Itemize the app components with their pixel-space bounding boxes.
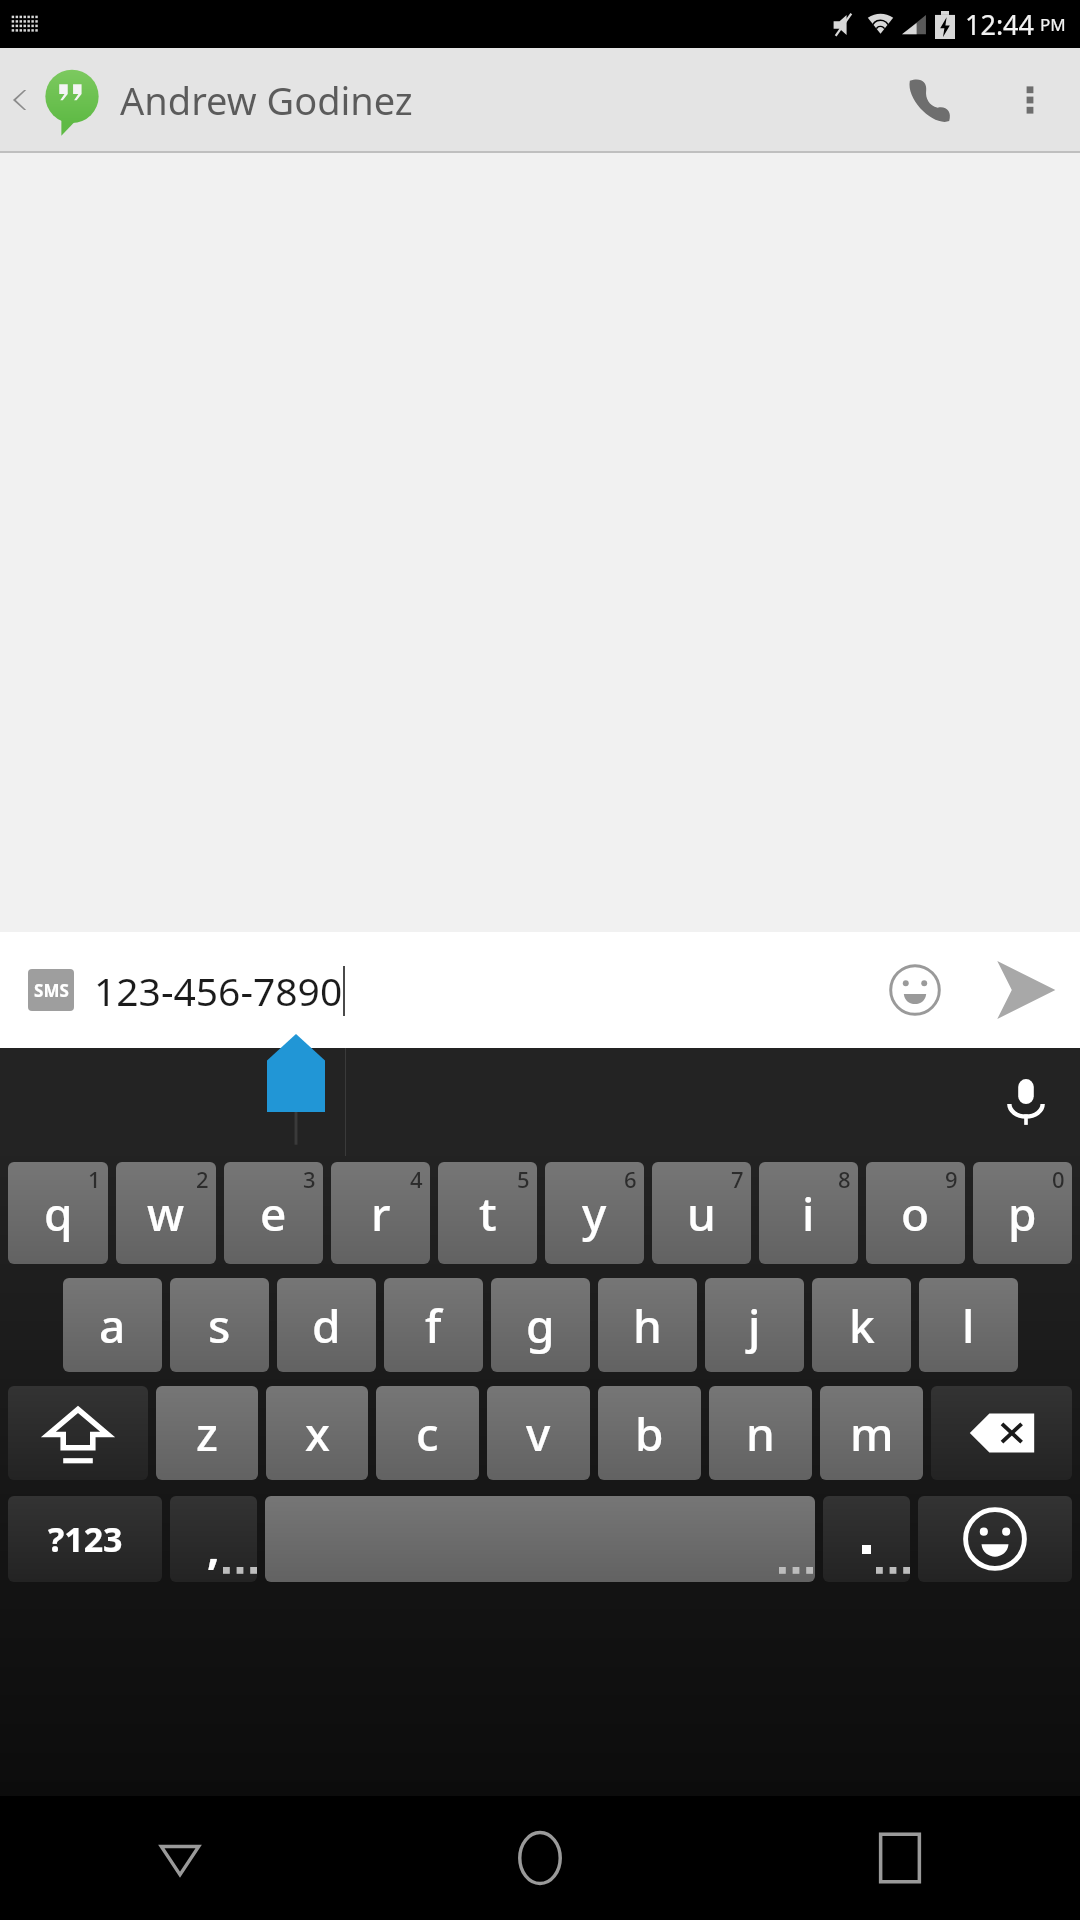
staticText: d [312,1294,341,1357]
button[interactable]: q [8,1162,108,1264]
staticText: p [1008,1182,1037,1245]
staticText: m [850,1402,894,1465]
button[interactable]: c [376,1386,479,1480]
button[interactable]: Send [970,935,1080,1045]
button[interactable]: l [919,1278,1018,1372]
staticText: 9 [945,1164,958,1194]
staticText: r [371,1182,391,1245]
button[interactable]: Emoji [918,1496,1072,1582]
staticText: y [582,1182,607,1245]
button[interactable]: u [652,1162,751,1264]
button[interactable]: SMS [0,932,1080,1048]
button[interactable]: x [266,1386,368,1480]
staticText: w [147,1182,185,1245]
button[interactable]: w [116,1162,216,1264]
button[interactable]: o [866,1162,965,1264]
staticText: 6 [624,1164,637,1194]
button[interactable]: e [224,1162,323,1264]
staticText: q [44,1182,73,1245]
staticText: 1 [88,1164,101,1194]
button[interactable]: r [331,1162,430,1264]
button[interactable]: Backspace [931,1386,1072,1480]
staticText: 5 [517,1164,530,1194]
staticText: l [962,1294,975,1357]
button[interactable]: v [487,1386,590,1480]
staticText: 8 [838,1164,851,1194]
button[interactable]: Shift [8,1386,148,1480]
staticText: PM [1040,13,1066,36]
staticText: o [901,1182,930,1245]
button[interactable]: f [384,1278,483,1372]
button[interactable]: Insert emoji [860,935,970,1045]
button[interactable]: t [438,1162,537,1264]
button[interactable]: Back [0,1796,360,1920]
button[interactable]: b [598,1386,701,1480]
button[interactable]: k [812,1278,911,1372]
button[interactable]: , [170,1496,257,1582]
button[interactable]: p [973,1162,1072,1264]
button[interactable]: y [545,1162,644,1264]
staticText: ?123 [48,1516,123,1562]
staticText: s [208,1294,231,1357]
button[interactable]: s [170,1278,269,1372]
other: Back [8,87,34,113]
button[interactable]: a [63,1278,162,1372]
button[interactable]: h [598,1278,697,1372]
staticText: g [526,1294,555,1357]
staticText: 4 [410,1164,423,1194]
button[interactable]: j [705,1278,804,1372]
staticText: j [748,1294,761,1357]
button[interactable]: g [491,1278,590,1372]
staticText: 2 [196,1164,209,1194]
button[interactable]: ?123 [8,1496,162,1582]
button[interactable]: Back [0,48,1080,151]
button[interactable]: Space [265,1496,815,1582]
staticText: c [416,1402,439,1465]
staticText: u [687,1182,716,1245]
staticText: t [479,1182,497,1245]
button[interactable]: d [277,1278,376,1372]
staticText: 0 [1052,1164,1065,1194]
staticText: f [425,1294,442,1357]
staticText: v [526,1402,551,1465]
staticText: k [849,1294,875,1357]
staticText: , [207,1517,220,1577]
staticText: 3 [303,1164,316,1194]
button[interactable]: m [820,1386,923,1480]
staticText: 12:44 [965,6,1035,43]
button[interactable]: Call [880,50,980,150]
button[interactable]: Voice input [972,1048,1080,1156]
staticText: h [633,1294,662,1357]
button[interactable]: More options [980,50,1080,150]
button[interactable]: Recent apps [720,1796,1080,1920]
staticText: z [196,1402,218,1465]
staticText: e [260,1182,287,1245]
staticText: x [305,1402,330,1465]
staticText: n [746,1402,775,1465]
button[interactable]: Home [360,1796,720,1920]
staticText: a [99,1294,126,1357]
staticText: Andrew Godinez [120,74,413,126]
staticText: b [635,1402,664,1465]
button[interactable]: z [156,1386,258,1480]
button[interactable]: n [709,1386,812,1480]
staticText: 123-456-7890 [94,964,343,1017]
staticText: i [802,1182,815,1245]
button[interactable]: i [759,1162,858,1264]
staticText: 7 [731,1164,744,1194]
staticText: SMS [34,979,69,1002]
button[interactable] [823,1496,910,1582]
